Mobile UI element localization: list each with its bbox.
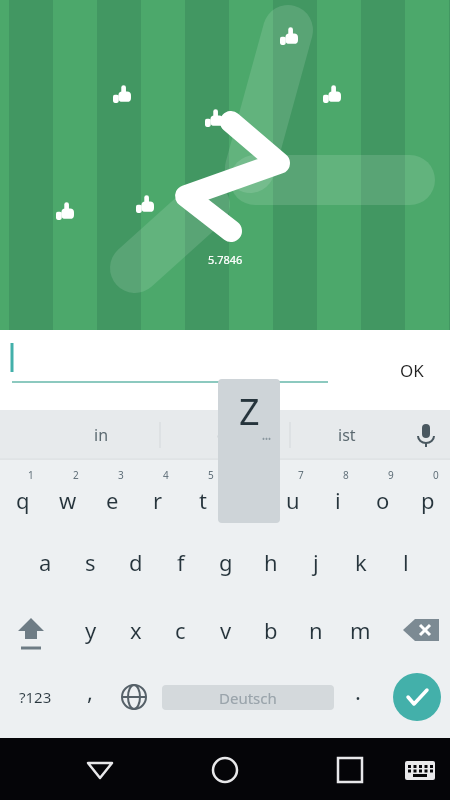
button[interactable]: f <box>158 528 203 596</box>
staticText: ist <box>338 424 356 446</box>
button[interactable]: Enter <box>393 673 441 721</box>
button[interactable]: 1 <box>0 460 45 528</box>
staticText: j <box>313 547 319 577</box>
staticText: v <box>220 615 232 645</box>
button[interactable]: v <box>203 596 248 664</box>
button[interactable]: ?123 <box>4 664 66 730</box>
button[interactable]: Home <box>200 744 250 794</box>
button[interactable]: 4 <box>135 460 180 528</box>
button[interactable]: h <box>248 528 293 596</box>
button[interactable]: s <box>68 528 113 596</box>
button[interactable]: Recents <box>325 744 375 794</box>
button[interactable]: j <box>293 528 338 596</box>
staticText: , <box>87 676 93 706</box>
button[interactable]: Deutsch <box>162 685 334 710</box>
staticText: d <box>129 547 143 577</box>
button[interactable]: Keyboard <box>395 744 445 794</box>
staticText: w <box>59 485 77 515</box>
staticText: c <box>175 615 186 645</box>
button[interactable]: 2 <box>45 460 90 528</box>
staticText: . <box>355 676 361 706</box>
button[interactable]: c <box>158 596 203 664</box>
staticText: e <box>106 485 119 515</box>
button[interactable]: b <box>248 596 293 664</box>
staticText: h <box>264 547 278 577</box>
button[interactable]: OK <box>392 351 432 390</box>
button[interactable] <box>12 340 332 400</box>
button[interactable]: in <box>61 410 141 460</box>
staticText: Z <box>239 387 260 436</box>
staticText: k <box>355 547 367 577</box>
staticText: 3 <box>118 468 124 482</box>
staticText: x <box>130 615 142 645</box>
staticText: 2 <box>73 468 79 482</box>
staticText: p <box>421 485 435 515</box>
staticText: f <box>177 547 185 577</box>
staticText: 5.7846 <box>208 252 243 267</box>
staticText: g <box>219 547 233 577</box>
staticText: 4 <box>163 468 169 482</box>
button[interactable]: 6 <box>225 460 270 528</box>
button[interactable]: . <box>338 664 378 730</box>
staticText: b <box>264 615 278 645</box>
button[interactable]: 5 <box>180 460 225 528</box>
staticText: r <box>153 485 163 515</box>
staticText: 8 <box>343 468 349 482</box>
button[interactable]: x <box>113 596 158 664</box>
button[interactable]: g <box>203 528 248 596</box>
staticText: ••• <box>262 433 272 444</box>
button[interactable]: n <box>293 596 338 664</box>
staticText: a <box>39 547 52 577</box>
staticText: t <box>199 485 207 515</box>
button[interactable]: Backspace <box>392 596 450 664</box>
button[interactable]: a <box>23 528 68 596</box>
button[interactable]: , <box>68 664 112 730</box>
button[interactable]: ist <box>307 410 387 460</box>
staticText: n <box>309 615 323 645</box>
staticText: o <box>376 485 390 515</box>
staticText: 7 <box>298 468 304 482</box>
button[interactable]: 8 <box>315 460 360 528</box>
button[interactable]: Back <box>75 744 125 794</box>
staticText: 9 <box>388 468 394 482</box>
staticText: 0 <box>433 468 439 482</box>
staticText: OK <box>400 359 424 382</box>
button[interactable]: d <box>113 528 158 596</box>
button[interactable]: m <box>338 596 383 664</box>
button[interactable]: k <box>338 528 383 596</box>
button[interactable]: 3 <box>90 460 135 528</box>
button[interactable]: y <box>68 596 113 664</box>
staticText: q <box>16 485 30 515</box>
staticText: d <box>217 424 227 446</box>
staticText: s <box>85 547 96 577</box>
staticText: 5 <box>208 468 214 482</box>
staticText: u <box>286 485 300 515</box>
button[interactable]: Shift <box>0 596 62 664</box>
button[interactable]: l <box>383 528 428 596</box>
staticText: 1 <box>28 468 34 482</box>
staticText: m <box>350 615 371 645</box>
button[interactable]: Change language <box>112 664 156 730</box>
button[interactable]: 0 <box>405 460 450 528</box>
button[interactable]: 7 <box>270 460 315 528</box>
staticText: ?123 <box>19 687 52 707</box>
staticText: l <box>403 547 409 577</box>
button[interactable]: 9 <box>360 460 405 528</box>
button[interactable]: Voice input <box>400 410 450 460</box>
staticText: y <box>85 615 97 645</box>
staticText: i <box>335 485 341 515</box>
staticText: in <box>94 424 109 446</box>
button[interactable]: d <box>182 410 262 460</box>
staticText: Deutsch <box>219 688 277 708</box>
